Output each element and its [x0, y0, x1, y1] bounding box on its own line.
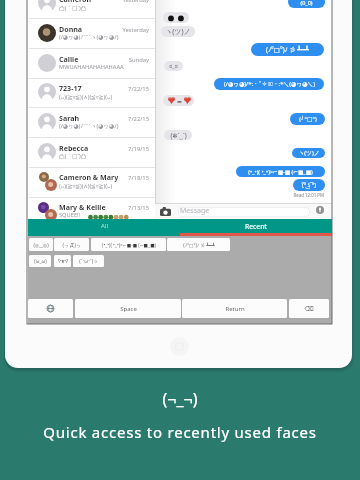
staticText: Cameron & Mary [59, 172, 119, 182]
staticText: (/◕ヮ◕)ﾉ˜˜˜ヽ(◕ヮ◕ﾉ) [59, 33, 119, 41]
button[interactable]: Space [75, 299, 181, 318]
staticText: Quick access to recently used faces [0, 422, 360, 442]
staticText: (◎__◎) [33, 242, 49, 248]
button[interactable]: (◎__◎) [29, 238, 53, 251]
button[interactable]: ⌫ [289, 299, 329, 318]
button[interactable] [28, 137, 155, 167]
staticText: Recent [245, 222, 267, 231]
staticText: 7/22/15 [109, 115, 149, 123]
staticText: (✼´‿`) [170, 131, 187, 139]
staticText: Donna [59, 24, 83, 34]
staticText: SQUEE!! [59, 211, 81, 219]
button[interactable]: ʕ•ᴥ•ʔ [54, 255, 71, 267]
staticText: Read 12:01 PM [284, 192, 324, 198]
button[interactable] [28, 167, 155, 197]
button[interactable] [178, 207, 310, 217]
button[interactable]: Record audio [316, 206, 324, 214]
button[interactable]: (•_•)( •_•)>⌐■-■ (⌐■_■) [91, 238, 166, 251]
staticText: MWUAHAHAHAHAHAAA [59, 63, 124, 71]
button[interactable]: {っ Д ́)っ [54, 238, 89, 251]
staticText: (0_0) [300, 0, 313, 6]
button[interactable]: (ω_ω) [29, 255, 51, 267]
staticText: ヽ(ツ)ノ [298, 149, 320, 157]
staticText: Message [180, 206, 210, 216]
staticText: ⌫ [304, 305, 314, 313]
staticText: ヽ(ツ)ノ [165, 27, 191, 37]
staticText: Sunday [109, 56, 149, 64]
staticText: 7/18/15 [109, 174, 149, 182]
staticText: All [101, 222, 108, 230]
staticText: 凸(｀□´)凸 [59, 152, 87, 160]
button[interactable]: (´･ω･`)っ [73, 255, 104, 267]
staticText: (ω_ω) [34, 258, 47, 264]
button[interactable]: All [28, 219, 180, 233]
button[interactable]: Return [182, 299, 287, 318]
staticText: 凸(｀□´)凸 [59, 4, 87, 12]
staticText: (͡° ͜ʖ ͡°) [302, 181, 316, 189]
button[interactable] [28, 48, 155, 78]
button[interactable]: Camera [160, 207, 171, 216]
staticText: 723-17 [59, 83, 82, 93]
staticText: Mary & Kellie [59, 202, 106, 212]
staticText: Return [225, 305, 245, 313]
staticText: Yesterday [109, 0, 149, 4]
button[interactable] [28, 78, 155, 108]
staticText: (¬_¬) [0, 388, 360, 410]
staticText: (ᴗ)(≧▿≦)(∧)(≦▿≧)(ᴗ) [59, 182, 113, 190]
staticText: Callie [59, 54, 79, 64]
staticText: (•_•)( •_•)>⌐■-■ (⌐■_■) [102, 242, 156, 248]
staticText: Rebecca [59, 143, 89, 153]
button[interactable] [28, 0, 155, 19]
button[interactable]: Switch keyboard [28, 299, 73, 318]
staticText: (ᴗ)(≧▿≦)(∧)(≦▿≧)(ᴗ) [59, 93, 113, 101]
staticText: (´･ω･`)っ [79, 258, 98, 264]
staticText: (ﾉ°□°)ﾉ 彡 ┻━┻ [183, 242, 215, 248]
button[interactable]: (ﾉ°□°)ﾉ 彡 ┻━┻ [167, 238, 230, 251]
button[interactable] [28, 18, 155, 48]
staticText: 7/13/15 [109, 204, 149, 212]
staticText: 7/22/15 [109, 85, 149, 93]
staticText: 7/19/15 [109, 145, 149, 153]
button[interactable]: Recent [180, 219, 332, 233]
staticText: {っ Д ́)っ [62, 242, 81, 248]
button[interactable] [28, 197, 155, 227]
staticText: (/◕ヮ◕)ﾉ˜˜˜ヽ(◕ヮ◕ﾉ) [59, 122, 119, 130]
staticText: Sarah [59, 113, 80, 123]
staticText: Cameron [59, 0, 92, 4]
staticText: (•_•)( •_•)>⌐■-■ (⌐■_■) [248, 168, 313, 176]
staticText: Space [120, 305, 137, 313]
staticText: Yesterday [109, 26, 149, 34]
button[interactable] [28, 107, 155, 137]
staticText: (╯°□°) [299, 115, 317, 123]
staticText: ʕ•ᴥ•ʔ [58, 258, 68, 264]
staticText: (ﾉ°□°)ﾉ 彡 ┻━┻ [266, 45, 309, 54]
staticText: ಠ_ಠ [169, 62, 178, 70]
staticText: (/◕ヮ◕)/*:・ﾟ✧ ✧ﾟ・:*＼(◕ヮ◕＼) [224, 80, 315, 88]
